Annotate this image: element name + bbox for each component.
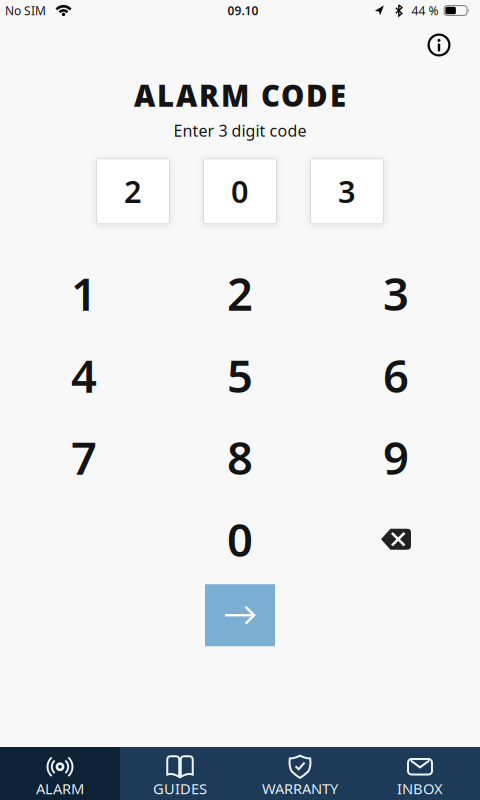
staticText: No SIM: [5, 2, 46, 18]
staticText: 5: [227, 345, 253, 405]
staticText: 9: [383, 427, 409, 487]
button[interactable]: 7: [9, 416, 159, 498]
button[interactable]: WARRANTY: [240, 747, 360, 800]
button[interactable]: GUIDES: [120, 747, 240, 800]
staticText: 1: [71, 263, 97, 323]
button[interactable]: 4: [9, 334, 159, 416]
staticText: 2: [124, 171, 142, 211]
button[interactable]: 1: [9, 252, 159, 334]
button[interactable]: 3: [321, 252, 471, 334]
staticText: 3: [338, 171, 356, 211]
staticText: 09.10: [227, 2, 258, 18]
staticText: ALARM: [36, 779, 84, 798]
staticText: 0: [231, 171, 249, 211]
button[interactable]: 6: [321, 334, 471, 416]
staticText: GUIDES: [153, 779, 207, 798]
button[interactable]: Delete: [321, 498, 471, 580]
button[interactable]: 8: [165, 416, 315, 498]
staticText: INBOX: [397, 779, 443, 798]
button[interactable]: INBOX: [360, 747, 480, 800]
button[interactable]: Submit code: [205, 584, 275, 646]
staticText: 6: [383, 345, 409, 405]
button[interactable]: 2: [165, 252, 315, 334]
staticText: 8: [227, 427, 253, 487]
button[interactable]: 5: [165, 334, 315, 416]
staticText: 3: [383, 263, 409, 323]
staticText: ALARM CODE: [134, 76, 346, 115]
button[interactable]: 0: [165, 498, 315, 580]
button[interactable]: 9: [321, 416, 471, 498]
staticText: 2: [227, 263, 253, 323]
button[interactable]: ALARM: [0, 747, 120, 800]
staticText: WARRANTY: [262, 779, 338, 798]
staticText: 44 %: [411, 2, 438, 18]
button[interactable]: Info: [424, 30, 454, 60]
staticText: 4: [71, 345, 97, 405]
staticText: Enter 3 digit code: [173, 120, 306, 141]
staticText: 7: [71, 427, 97, 487]
staticText: 0: [227, 509, 253, 569]
